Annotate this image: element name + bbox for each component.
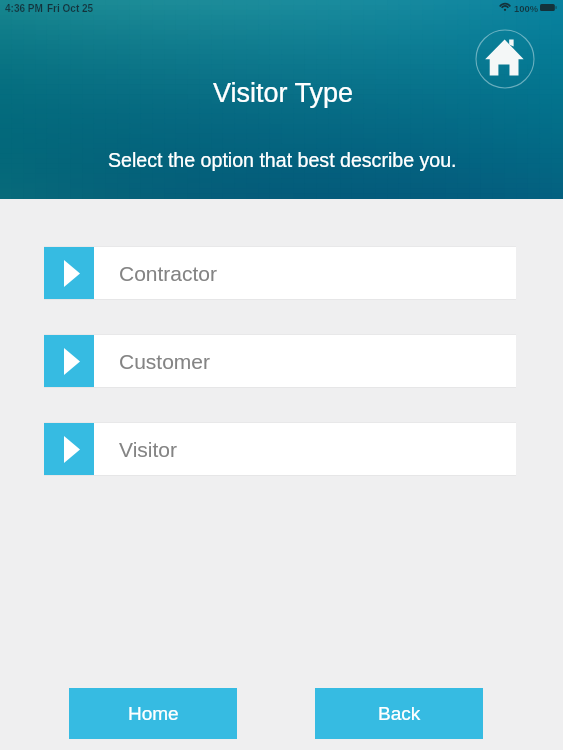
button[interactable]: Back [315,688,483,739]
button[interactable]: Contractor [44,247,516,299]
staticText: Fri Oct 25 [47,3,94,14]
staticText: Customer [119,350,211,373]
staticText: Select the option that best describe you… [108,149,457,171]
button[interactable]: Visitor [44,423,516,475]
staticText: 4:36 PM [5,3,43,14]
staticText: Visitor [119,438,177,461]
button[interactable]: Home [69,688,237,739]
staticText: Home [128,703,179,724]
staticText: Visitor Type [213,78,354,108]
button[interactable]: Home [473,27,537,91]
staticText: Contractor [119,262,218,285]
staticText: Back [378,703,421,724]
button[interactable]: Customer [44,335,516,387]
staticText: 100% [514,3,539,14]
